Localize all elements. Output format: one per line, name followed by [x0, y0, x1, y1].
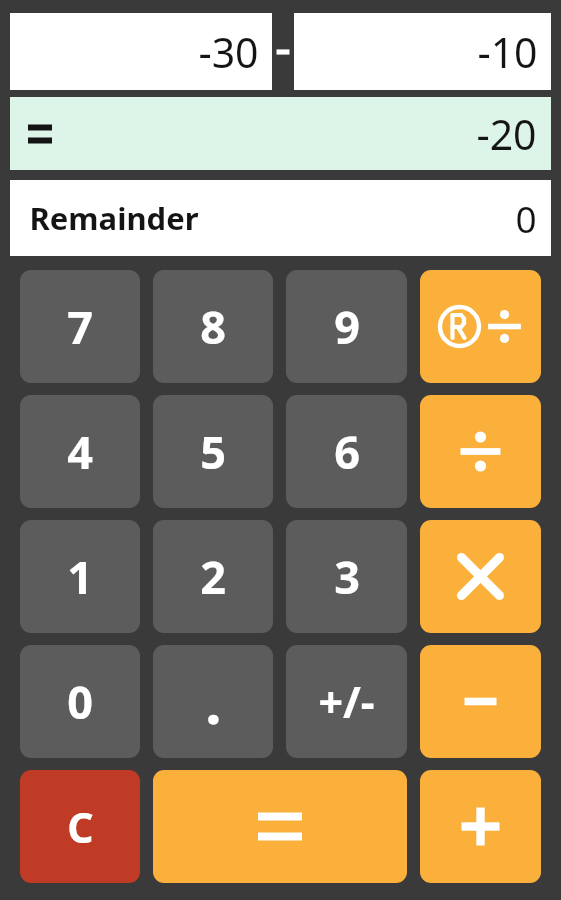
button[interactable]: 7: [20, 270, 140, 383]
staticText: 7: [67, 296, 93, 357]
staticText: 3: [334, 546, 360, 607]
staticText: 4: [67, 421, 93, 482]
button[interactable]: 8: [153, 270, 273, 383]
staticText: 0: [67, 671, 93, 732]
staticText: .: [205, 662, 222, 741]
button[interactable]: 0: [20, 645, 140, 758]
staticText: -30: [198, 24, 259, 80]
button[interactable]: Add: [420, 770, 541, 883]
staticText: C: [67, 799, 94, 855]
button[interactable]: -30: [10, 13, 272, 90]
button[interactable]: Divide: [420, 395, 541, 508]
button[interactable]: 1: [20, 520, 140, 633]
button[interactable]: 3: [286, 520, 407, 633]
staticText: -20: [476, 106, 537, 162]
button[interactable]: -10: [294, 13, 551, 90]
button[interactable]: 6: [286, 395, 407, 508]
staticText: 9: [334, 296, 360, 357]
button[interactable]: 4: [20, 395, 140, 508]
button[interactable]: 5: [153, 395, 273, 508]
button[interactable]: Remainder: [10, 180, 551, 256]
staticText: 6: [334, 421, 360, 482]
staticText: +/-: [318, 672, 375, 731]
staticText: 5: [200, 421, 226, 482]
button[interactable]: Subtract: [420, 645, 541, 758]
button[interactable]: C: [20, 770, 140, 883]
staticText: -10: [477, 24, 538, 80]
staticText: 8: [200, 296, 226, 357]
button[interactable]: +/-: [286, 645, 407, 758]
button[interactable]: 2: [153, 520, 273, 633]
button[interactable]: .: [153, 645, 273, 758]
button[interactable]: Multiply: [420, 520, 541, 633]
button[interactable]: Remainder divide: [420, 270, 541, 383]
staticText: Remainder: [29, 197, 199, 239]
staticText: 0: [515, 193, 537, 243]
staticText: 2: [200, 546, 226, 607]
button[interactable]: -20: [10, 97, 551, 170]
button[interactable]: 9: [286, 270, 407, 383]
staticText: 1: [67, 546, 93, 607]
button[interactable]: Equals: [153, 770, 407, 883]
